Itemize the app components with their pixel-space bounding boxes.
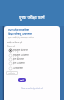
staticText: परीक्षा का प्रकार चुनें (7, 41, 23, 44)
staticText: शिक्षा परिषद्, प्रयागराज (8, 32, 32, 36)
staticText: हाईस्कूल संस्थागत (13, 49, 28, 52)
button[interactable]: अनुक्रमांक (6, 71, 18, 75)
staticText: इंटर व्यक्तिगत (13, 62, 25, 65)
button[interactable]: इंटर व्यक्तिगत (9, 61, 33, 65)
button[interactable]: इंटर संस्थागत (9, 57, 33, 61)
staticText: पूरक परीक्षा हेतु ऑनलाइन आवेदन (8, 36, 34, 39)
staticText: खोजें (20, 79, 24, 82)
staticText: उत्तर प्रदेश माध्यमिक (8, 28, 29, 32)
staticText: व्यावसायिक (13, 67, 23, 70)
staticText: पूरक परीक्षा फार्म (19, 15, 45, 21)
staticText: हाईस्कूल व्यक्तिगत (13, 54, 29, 57)
button[interactable]: खोजें (18, 78, 26, 82)
staticText: अनुक्रमांक (8, 72, 16, 75)
button[interactable]: हाईस्कूल संस्थागत (9, 48, 33, 52)
staticText: विवरण भरें (7, 45, 16, 48)
button[interactable]: हाईस्कूल व्यक्तिगत (9, 53, 33, 57)
button[interactable]: व्यावसायिक (9, 66, 33, 70)
staticText: इंटर संस्थागत (13, 58, 24, 61)
staticText: किसी भी समस्या हेतु सम्पर्क करें (4, 87, 60, 90)
